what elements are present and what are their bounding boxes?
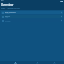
button[interactable]: Recent xyxy=(1,15,63,18)
staticText: Archive xyxy=(5,20,11,22)
staticText: Today · Updated just now xyxy=(1,7,20,9)
staticText: 4 new xyxy=(5,17,9,18)
staticText: Daily summary xyxy=(5,11,16,13)
staticText: 12 items xyxy=(5,13,10,14)
button[interactable]: Archive xyxy=(1,19,63,22)
staticText: Recent xyxy=(5,15,11,17)
button[interactable]: More xyxy=(50,62,59,64)
staticText: 9:41 xyxy=(1,0,4,2)
button[interactable]: Stats xyxy=(30,62,44,64)
staticText: Overview xyxy=(1,3,14,7)
button[interactable]: Daily summary xyxy=(1,11,63,14)
staticText: Home xyxy=(14,63,17,64)
button[interactable]: Home xyxy=(6,62,25,64)
staticText: Stats xyxy=(36,63,39,64)
